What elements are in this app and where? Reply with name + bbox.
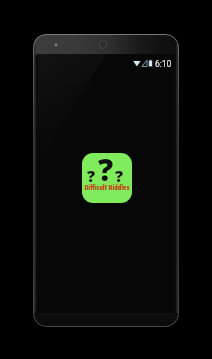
staticText: ? [98, 153, 114, 190]
button[interactable]: Difficult Riddles app icon [82, 153, 132, 203]
staticText: 6:10 [155, 59, 172, 69]
staticText: Difficult Riddles [82, 184, 132, 192]
staticText: ? [87, 165, 96, 187]
staticText: ? [115, 165, 124, 187]
